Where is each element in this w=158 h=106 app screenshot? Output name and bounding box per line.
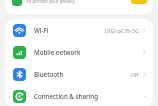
button[interactable]: Bluetooth bbox=[5, 63, 153, 85]
staticText: Bluetooth bbox=[34, 70, 64, 78]
staticText: DIGI-pC7h-5G bbox=[105, 27, 139, 34]
button[interactable] bbox=[131, 0, 147, 4]
staticText: Off bbox=[131, 71, 139, 78]
button[interactable]: Wi-Fi bbox=[5, 19, 153, 41]
other: Bluetooth bbox=[13, 68, 26, 81]
button[interactable]: Mobile network bbox=[5, 41, 153, 63]
staticText: Mobile network bbox=[34, 48, 81, 56]
other: Mobile network bbox=[13, 46, 26, 59]
staticText: Wi-Fi bbox=[34, 26, 49, 34]
button[interactable]: to protect your privacy bbox=[5, 0, 153, 14]
button[interactable]: Connection and sharing bbox=[5, 85, 153, 106]
other: Wi-Fi bbox=[13, 24, 26, 37]
staticText: Connection & sharing bbox=[34, 92, 98, 100]
staticText: to protect your privacy bbox=[27, 0, 75, 4]
other: Connection and sharing bbox=[13, 90, 26, 103]
